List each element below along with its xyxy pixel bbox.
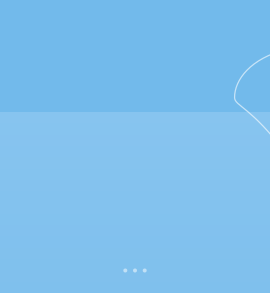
button[interactable]: Page 1 of 3 [112,262,158,278]
